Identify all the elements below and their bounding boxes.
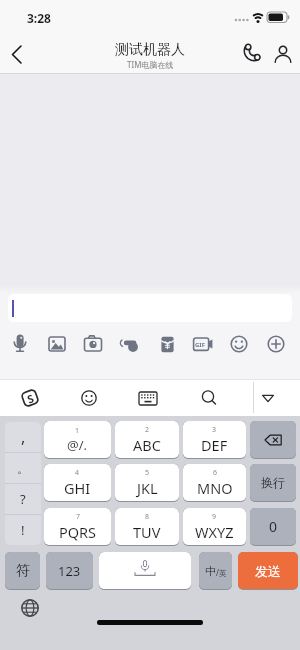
staticText: ?: [20, 490, 26, 508]
button[interactable]: 6: [183, 464, 246, 501]
button[interactable]: 。: [5, 453, 41, 483]
button[interactable]: 5: [115, 464, 179, 501]
button[interactable]: 9: [183, 508, 246, 545]
staticText: 换行: [261, 475, 285, 490]
button[interactable]: 1: [44, 421, 111, 458]
button[interactable]: [99, 552, 191, 589]
staticText: 7: [76, 512, 81, 522]
button[interactable]: 7: [44, 508, 111, 545]
staticText: GIF: [195, 341, 205, 349]
staticText: 英: [219, 569, 227, 578]
button[interactable]: [239, 42, 265, 68]
button[interactable]: S: [17, 385, 43, 411]
staticText: 9: [212, 512, 217, 522]
staticText: WXYZ: [195, 522, 234, 542]
button[interactable]: [226, 331, 252, 357]
staticText: 2: [145, 425, 150, 435]
button[interactable]: [250, 421, 296, 458]
staticText: 。: [17, 461, 29, 476]
staticText: 6: [213, 468, 218, 478]
button[interactable]: 4: [44, 464, 111, 501]
staticText: 中: [205, 564, 216, 578]
button[interactable]: [117, 331, 143, 357]
button[interactable]: 换行: [250, 464, 296, 501]
button[interactable]: [18, 596, 42, 620]
staticText: 123: [58, 562, 81, 580]
staticText: 测试机器人: [115, 41, 185, 59]
staticText: JKL: [137, 478, 158, 498]
staticText: 3:28: [27, 10, 51, 26]
staticText: 发送: [255, 563, 281, 579]
button[interactable]: 发送: [238, 552, 298, 589]
staticText: @/.: [67, 436, 88, 454]
button[interactable]: 符: [5, 552, 40, 589]
staticText: /: [216, 567, 219, 578]
staticText: ABC: [133, 435, 161, 455]
button[interactable]: [135, 385, 161, 411]
button[interactable]: [76, 385, 102, 411]
staticText: 1: [75, 426, 80, 436]
staticText: !: [21, 521, 25, 539]
button[interactable]: [4, 41, 32, 69]
button[interactable]: [8, 294, 292, 322]
staticText: ,: [21, 426, 26, 448]
button[interactable]: [255, 385, 281, 411]
button[interactable]: [196, 385, 222, 411]
button[interactable]: [263, 331, 289, 357]
button[interactable]: [80, 331, 106, 357]
button[interactable]: ?: [5, 484, 41, 514]
staticText: 3: [212, 425, 217, 435]
button[interactable]: 3: [183, 421, 246, 458]
staticText: S: [25, 390, 36, 407]
button[interactable]: 0: [250, 508, 296, 545]
button[interactable]: !: [5, 515, 41, 545]
button[interactable]: 8: [115, 508, 179, 545]
button[interactable]: 123: [46, 552, 93, 589]
staticText: MNO: [197, 478, 233, 498]
button[interactable]: [154, 331, 180, 357]
button[interactable]: [7, 331, 33, 357]
staticText: 符: [16, 562, 30, 580]
button[interactable]: GIF: [190, 331, 216, 357]
staticText: 5: [145, 468, 150, 478]
button[interactable]: [44, 331, 70, 357]
staticText: GHI: [64, 478, 91, 498]
staticText: PQRS: [59, 522, 97, 542]
staticText: TIM电脑在线: [127, 59, 174, 70]
button[interactable]: 中: [199, 552, 232, 589]
staticText: 4: [75, 468, 80, 478]
staticText: TUV: [133, 522, 161, 542]
staticText: DEF: [201, 435, 228, 455]
button[interactable]: 2: [115, 421, 179, 458]
staticText: 0: [269, 517, 278, 536]
staticText: 8: [145, 512, 150, 522]
button[interactable]: [270, 42, 296, 68]
button[interactable]: ,: [5, 422, 41, 452]
